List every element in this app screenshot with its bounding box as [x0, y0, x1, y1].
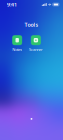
staticText: Notes [12, 47, 22, 52]
staticText: Scanner [29, 47, 43, 52]
staticText: 9:41 [7, 1, 17, 8]
button[interactable]: Scanner [29, 35, 43, 52]
staticText: Tools [24, 21, 38, 28]
button[interactable]: Notes [12, 35, 22, 52]
